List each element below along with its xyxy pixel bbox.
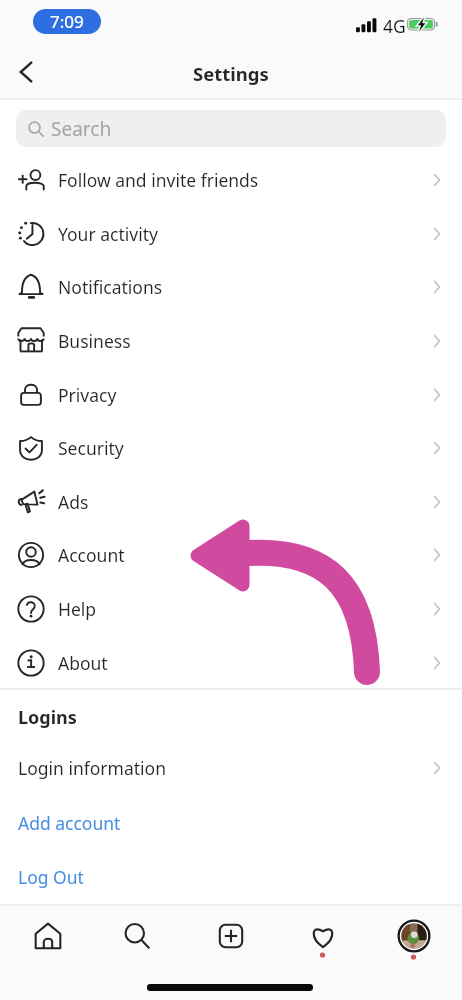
staticText: Settings [193,61,269,86]
staticText: Follow and invite friends [58,168,259,192]
button[interactable]: Back [3,49,49,95]
button[interactable]: Search [16,110,446,147]
staticText: Security [58,436,124,460]
staticText: 4G [383,14,406,38]
staticText: 7:09 [50,10,84,33]
staticText: Your activity [58,222,158,246]
button[interactable]: Your activity [0,207,462,261]
button[interactable]: Ads [0,475,462,529]
button[interactable]: Security [0,421,462,475]
staticText: Help [58,597,97,621]
button[interactable]: Notifications [0,260,462,314]
button[interactable]: Log Out [0,850,462,904]
staticText: Login information [18,756,166,780]
staticText: Privacy [58,383,117,407]
staticText: Search [51,116,112,142]
staticText: Ads [58,490,89,514]
staticText: Notifications [58,275,163,299]
staticText: Log Out [18,865,84,889]
button[interactable]: Follow and invite friends [0,153,462,207]
staticText: Add account [18,811,121,835]
button[interactable]: Privacy [0,368,462,422]
button[interactable]: Home [17,907,79,965]
button[interactable]: Activity [292,907,354,965]
button[interactable]: Add account [0,796,462,850]
staticText: Business [58,329,131,353]
button[interactable]: Login information [0,741,462,795]
button[interactable]: Search [106,907,168,965]
button[interactable]: Profile [383,907,445,965]
button[interactable]: About [0,636,462,690]
button[interactable]: New post [200,907,262,965]
button[interactable]: Account [0,528,462,582]
staticText: Account [58,543,125,567]
button[interactable]: Business [0,314,462,368]
staticText: About [58,651,108,675]
staticText: Logins [18,705,77,730]
button[interactable]: Help [0,582,462,636]
